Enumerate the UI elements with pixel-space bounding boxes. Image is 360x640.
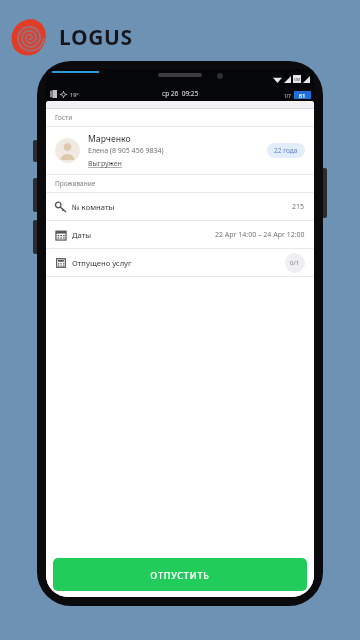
staticText: Елена (8 905 456 9834) [88,146,164,156]
button[interactable]: № комнаты [46,193,314,220]
button[interactable]: Отпущено услуг [46,249,314,276]
button[interactable]: Марченко [46,127,314,174]
staticText: 19° [70,91,79,98]
staticText: 1/7 [284,93,291,99]
staticText: Отпущено услуг [72,258,132,268]
staticText: ср 26 09:25 [162,89,199,98]
staticText: Марченко [88,133,131,145]
staticText: LOGUS [59,23,133,52]
staticText: 22 года [274,146,298,155]
staticText: Проживание [55,179,96,188]
staticText: № комнаты [72,202,115,212]
button[interactable]: Даты [46,221,314,248]
staticText: Гости [55,113,73,122]
staticText: 61 [299,92,306,99]
staticText: 215 [292,202,305,212]
button[interactable]: ОТПУСТИТЬ [53,558,307,591]
staticText: Выгружен [88,159,122,169]
staticText: 22 Apr 14:00 – 24 Apr 12:00 [215,230,305,240]
staticText: ОТПУСТИТЬ [150,569,210,581]
staticText: Даты [72,230,92,240]
staticText: 0/1 [290,259,300,267]
staticText: SIM [294,77,301,82]
